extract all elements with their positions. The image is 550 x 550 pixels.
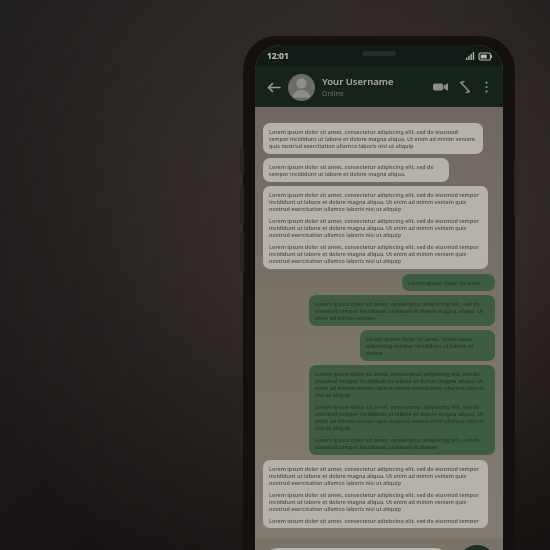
button[interactable]: Lorem ipsum dolor sit amet, consectetur … bbox=[360, 330, 495, 361]
button[interactable]: Your Username bbox=[322, 75, 429, 99]
staticText: Lorem ipsum dolor sit amet, consectetur … bbox=[269, 491, 482, 512]
button[interactable]: Video call bbox=[429, 76, 451, 98]
button[interactable]: Record voice message bbox=[458, 545, 496, 550]
button[interactable]: More options bbox=[477, 78, 495, 96]
button[interactable]: Voice call bbox=[454, 76, 476, 98]
staticText: Lorem ipsum dolor sit amet, consectetur … bbox=[269, 163, 443, 177]
staticText: Your Username bbox=[322, 75, 394, 88]
staticText: Lorem ipsum dolor sit amet, consectetur … bbox=[269, 128, 477, 149]
button[interactable]: Lorem ipsum dolor sit amet, consectetur … bbox=[263, 123, 483, 154]
button[interactable]: Lorem ipsum dolor sit amet, consectetur … bbox=[263, 186, 488, 269]
staticText: Lorem ipsum dolor sit amet, consectetur … bbox=[315, 300, 489, 321]
staticText: Online bbox=[322, 89, 344, 99]
staticText: Lorem ipsum dolor sit amet, consectetur … bbox=[269, 517, 482, 523]
staticText: Lorem ipsum dolor sit amet, consectetur … bbox=[366, 335, 489, 356]
staticText: 12:01 bbox=[267, 50, 289, 62]
staticText: Lorem ipsum dolor sit amet, consectetur … bbox=[269, 465, 482, 486]
button[interactable]: Lorem ipsum dolor sit amet, consectetur … bbox=[309, 365, 495, 455]
button[interactable]: Contact avatar bbox=[288, 74, 315, 101]
staticText: Lorem ipsum dolor sit amet bbox=[408, 279, 489, 286]
button[interactable]: Back bbox=[263, 77, 283, 97]
button[interactable]: Lorem ipsum dolor sit amet, consectetur … bbox=[263, 158, 449, 182]
button[interactable]: Lorem ipsum dolor sit amet, consectetur … bbox=[309, 295, 495, 326]
staticText: Lorem ipsum dolor sit amet, consectetur … bbox=[269, 217, 482, 238]
button[interactable]: Type a message bbox=[262, 548, 451, 550]
staticText: Lorem ipsum dolor sit amet, consectetur … bbox=[315, 403, 489, 431]
staticText: Lorem ipsum dolor sit amet, consectetur … bbox=[315, 436, 489, 450]
button[interactable]: Lorem ipsum dolor sit amet bbox=[402, 274, 495, 291]
staticText: Lorem ipsum dolor sit amet, consectetur … bbox=[269, 243, 482, 264]
button[interactable]: Lorem ipsum dolor sit amet, consectetur … bbox=[263, 460, 488, 528]
staticText: Lorem ipsum dolor sit amet, consectetur … bbox=[269, 191, 482, 212]
staticText: Lorem ipsum dolor sit amet, consectetur … bbox=[315, 370, 489, 398]
